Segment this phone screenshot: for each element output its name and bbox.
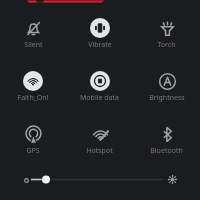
button[interactable]: Minimum brightness: [20, 174, 33, 187]
staticText: GPS: [26, 146, 40, 156]
button[interactable]: Brightness: [133, 71, 200, 103]
button[interactable]: Mobile data: [66, 71, 133, 103]
button[interactable]: Bluetooth: [133, 124, 200, 156]
button[interactable]: Hotspot: [66, 124, 133, 156]
staticText: Torch: [157, 40, 176, 50]
button[interactable]: Vibrate: [66, 18, 133, 50]
button[interactable]: Faith_On!: [0, 71, 66, 103]
staticText: Mobile data: [80, 93, 119, 103]
staticText: Silent: [24, 40, 43, 50]
staticText: Bluetooth: [150, 146, 183, 156]
button[interactable]: Maximum brightness: [166, 173, 179, 186]
button[interactable]: Torch: [133, 18, 200, 50]
button[interactable]: GPS: [0, 124, 66, 156]
staticText: Hotspot: [86, 146, 113, 156]
staticText: Vibrate: [88, 40, 112, 50]
staticText: Brightness: [149, 93, 185, 103]
staticText: Faith_On!: [17, 93, 49, 103]
button[interactable]: [0, 170, 200, 190]
button[interactable]: Silent: [0, 18, 66, 50]
